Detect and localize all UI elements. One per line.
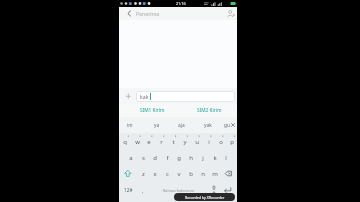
button[interactable]: 12# [119,182,137,198]
staticText: o [219,138,223,146]
button[interactable]: p [227,134,237,149]
staticText: · Bahasa Indonesia · [161,188,196,193]
staticText: t [172,138,175,146]
button[interactable]: w [131,134,143,149]
staticText: ini [127,122,133,129]
staticText: j [202,154,204,162]
staticText: h [189,154,193,162]
staticText: n [201,170,205,178]
button[interactable] [224,7,237,20]
staticText: e [147,138,151,146]
staticText: s [142,154,145,162]
staticText: x [153,170,157,178]
staticText: 12# [124,187,133,194]
staticText: q [123,138,127,146]
button[interactable] [208,182,220,198]
button[interactable]: f [161,150,173,165]
button[interactable]: SIM2 Kirim [195,104,223,117]
button[interactable]: u [191,134,203,149]
button[interactable]: y [179,134,191,149]
button[interactable]: kak [136,91,235,102]
staticText: f [166,154,169,162]
staticText: kak [140,93,149,100]
button[interactable]: x [149,166,161,181]
button[interactable]: ini [122,117,137,133]
button[interactable]: c [161,166,173,181]
button[interactable]: · Bahasa Indonesia · [149,182,208,198]
staticText: v [177,170,181,178]
button[interactable] [219,166,237,181]
button[interactable]: i [203,134,215,149]
staticText: , [142,187,144,194]
staticText: i [208,138,210,146]
button[interactable]: j [197,150,209,165]
button[interactable] [219,182,237,198]
staticText: l [225,154,227,162]
staticText: 21:16 [176,1,186,6]
button[interactable]: t [167,134,179,149]
staticText: k [213,154,217,162]
staticText: g [177,154,181,162]
staticText: m [212,170,218,178]
button[interactable]: e [143,134,155,149]
button[interactable]: gu [219,117,234,133]
staticText: Recorded by XRecorder [185,195,225,200]
button[interactable]: a [125,150,137,165]
staticText: p [230,138,234,146]
button[interactable]: b [185,166,197,181]
button[interactable]: l [221,150,231,165]
staticText: SIM2 Kirim [197,107,222,114]
button[interactable]: v [173,166,185,181]
button[interactable] [119,166,137,181]
button[interactable]: n [197,166,209,181]
staticText: y [183,138,187,146]
button[interactable] [229,117,237,133]
button[interactable]: ya [149,117,164,133]
button[interactable]: k [209,150,221,165]
button[interactable]: s [137,150,149,165]
staticText: yak [204,122,212,129]
staticText: u [195,138,199,146]
staticText: b [189,170,193,178]
button[interactable]: d [149,150,161,165]
button[interactable]: yak [200,117,215,133]
button[interactable]: r [155,134,167,149]
button[interactable]: z [137,166,149,181]
staticText: Penerima [136,10,160,17]
staticText: w [135,138,140,146]
button[interactable]: SIM1 Kirim [138,104,166,117]
button[interactable]: h [185,150,197,165]
staticText: z [142,170,145,178]
button[interactable]: o [215,134,227,149]
button[interactable] [124,7,134,20]
staticText: gu [224,122,230,129]
staticText: ya [154,122,160,129]
staticText: SIM1 Kirim [140,107,165,114]
button[interactable]: m [209,166,220,181]
button[interactable]: q [119,134,131,149]
button[interactable]: g [173,150,185,165]
staticText: c [166,170,169,178]
staticText: d [153,154,157,162]
button[interactable]: aja [174,117,189,133]
staticText: r [160,138,163,146]
staticText: aja [178,122,185,129]
button[interactable] [123,90,134,102]
staticText: a [129,154,133,162]
button[interactable]: , [137,182,149,198]
